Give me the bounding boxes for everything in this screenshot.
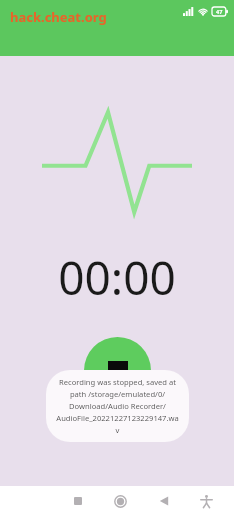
staticText: Recording was stopped, saved at path /st… [56,377,179,435]
button[interactable]: Home [99,486,142,516]
button[interactable]: Recent apps [56,486,99,516]
button[interactable]: Stop recording [84,337,151,404]
button[interactable]: Accessibility [185,486,228,516]
staticText: 00:00 [58,246,176,309]
staticText: 47 [216,8,223,15]
staticText: hack.cheat.org [10,8,107,26]
button[interactable]: Back [142,486,185,516]
